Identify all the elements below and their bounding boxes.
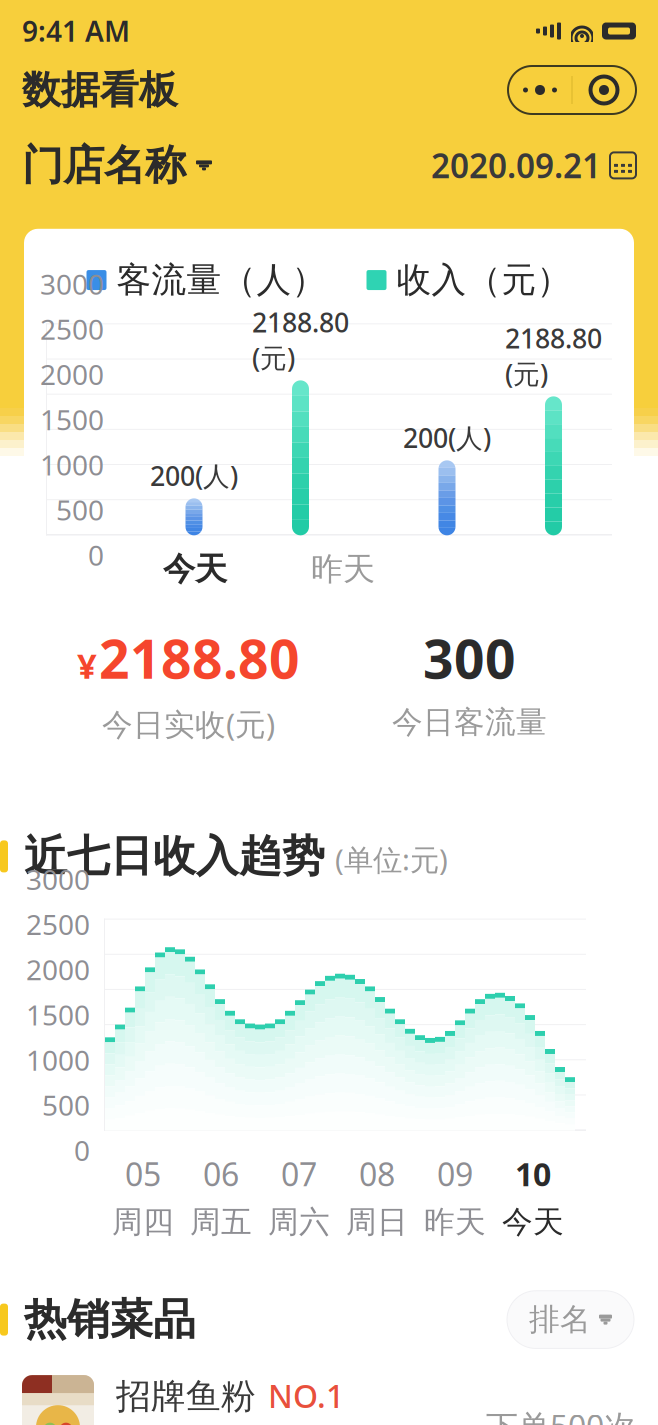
staticText: 客流量（人）: [116, 259, 326, 301]
button[interactable]: Pick date: [431, 143, 636, 188]
staticText: 06: [203, 1153, 239, 1195]
button[interactable]: 门店名称: [22, 140, 212, 191]
staticText: ¥: [77, 642, 97, 688]
staticText: 1000: [26, 1041, 90, 1078]
staticText: (单位:元): [335, 840, 448, 879]
staticText: 07: [281, 1153, 317, 1195]
staticText: 昨天: [424, 1203, 486, 1241]
button[interactable]: 排名: [507, 1291, 634, 1348]
staticText: 门店名称: [22, 140, 186, 191]
staticText: 招牌鱼粉: [116, 1375, 256, 1418]
staticText: 2000: [26, 951, 90, 988]
staticText: 数据看板: [22, 66, 178, 114]
staticText: 收入（元）: [396, 259, 571, 301]
staticText: 周四: [112, 1203, 174, 1241]
staticText: 500: [42, 1086, 90, 1124]
staticText: 今天: [163, 549, 227, 589]
staticText: 2020.09.21: [431, 143, 601, 188]
staticText: 200(人): [150, 458, 238, 493]
button[interactable]: More options: [508, 66, 636, 114]
staticText: 周五: [190, 1203, 252, 1241]
staticText: 500: [56, 491, 104, 528]
staticText: 3000: [40, 265, 104, 302]
staticText: 0: [88, 536, 104, 573]
staticText: 300: [423, 623, 516, 693]
staticText: 08: [359, 1153, 395, 1195]
staticText: 下单500次: [486, 1405, 636, 1425]
staticText: 2188.80: [99, 623, 300, 693]
staticText: 2000: [40, 356, 104, 393]
button[interactable]: 招牌鱼粉: [0, 1374, 658, 1425]
staticText: 2500: [26, 906, 90, 943]
staticText: 排名: [529, 1301, 591, 1338]
staticText: 今日实收(元): [102, 703, 275, 744]
staticText: 05: [125, 1153, 161, 1195]
staticText: 今日客流量: [392, 703, 547, 741]
staticText: 周六: [268, 1203, 330, 1241]
staticText: 200(人): [403, 420, 491, 455]
staticText: 1500: [40, 401, 104, 438]
staticText: 2500: [40, 310, 104, 348]
staticText: 今天: [502, 1203, 564, 1241]
staticText: 昨天: [311, 549, 375, 589]
staticText: 2188.80(元): [505, 320, 602, 391]
staticText: NO.1: [268, 1374, 344, 1417]
staticText: 1000: [40, 446, 104, 483]
staticText: 近七日收入趋势: [24, 830, 325, 883]
staticText: 10: [515, 1153, 551, 1195]
staticText: 9:41 AM: [22, 12, 130, 50]
staticText: 09: [437, 1153, 473, 1195]
staticText: 1500: [26, 996, 90, 1033]
staticText: 2188.80(元): [252, 304, 349, 375]
staticText: 热销菜品: [24, 1293, 196, 1346]
staticText: 3000: [26, 860, 90, 898]
staticText: 0: [74, 1132, 90, 1169]
staticText: 周日: [346, 1203, 408, 1241]
